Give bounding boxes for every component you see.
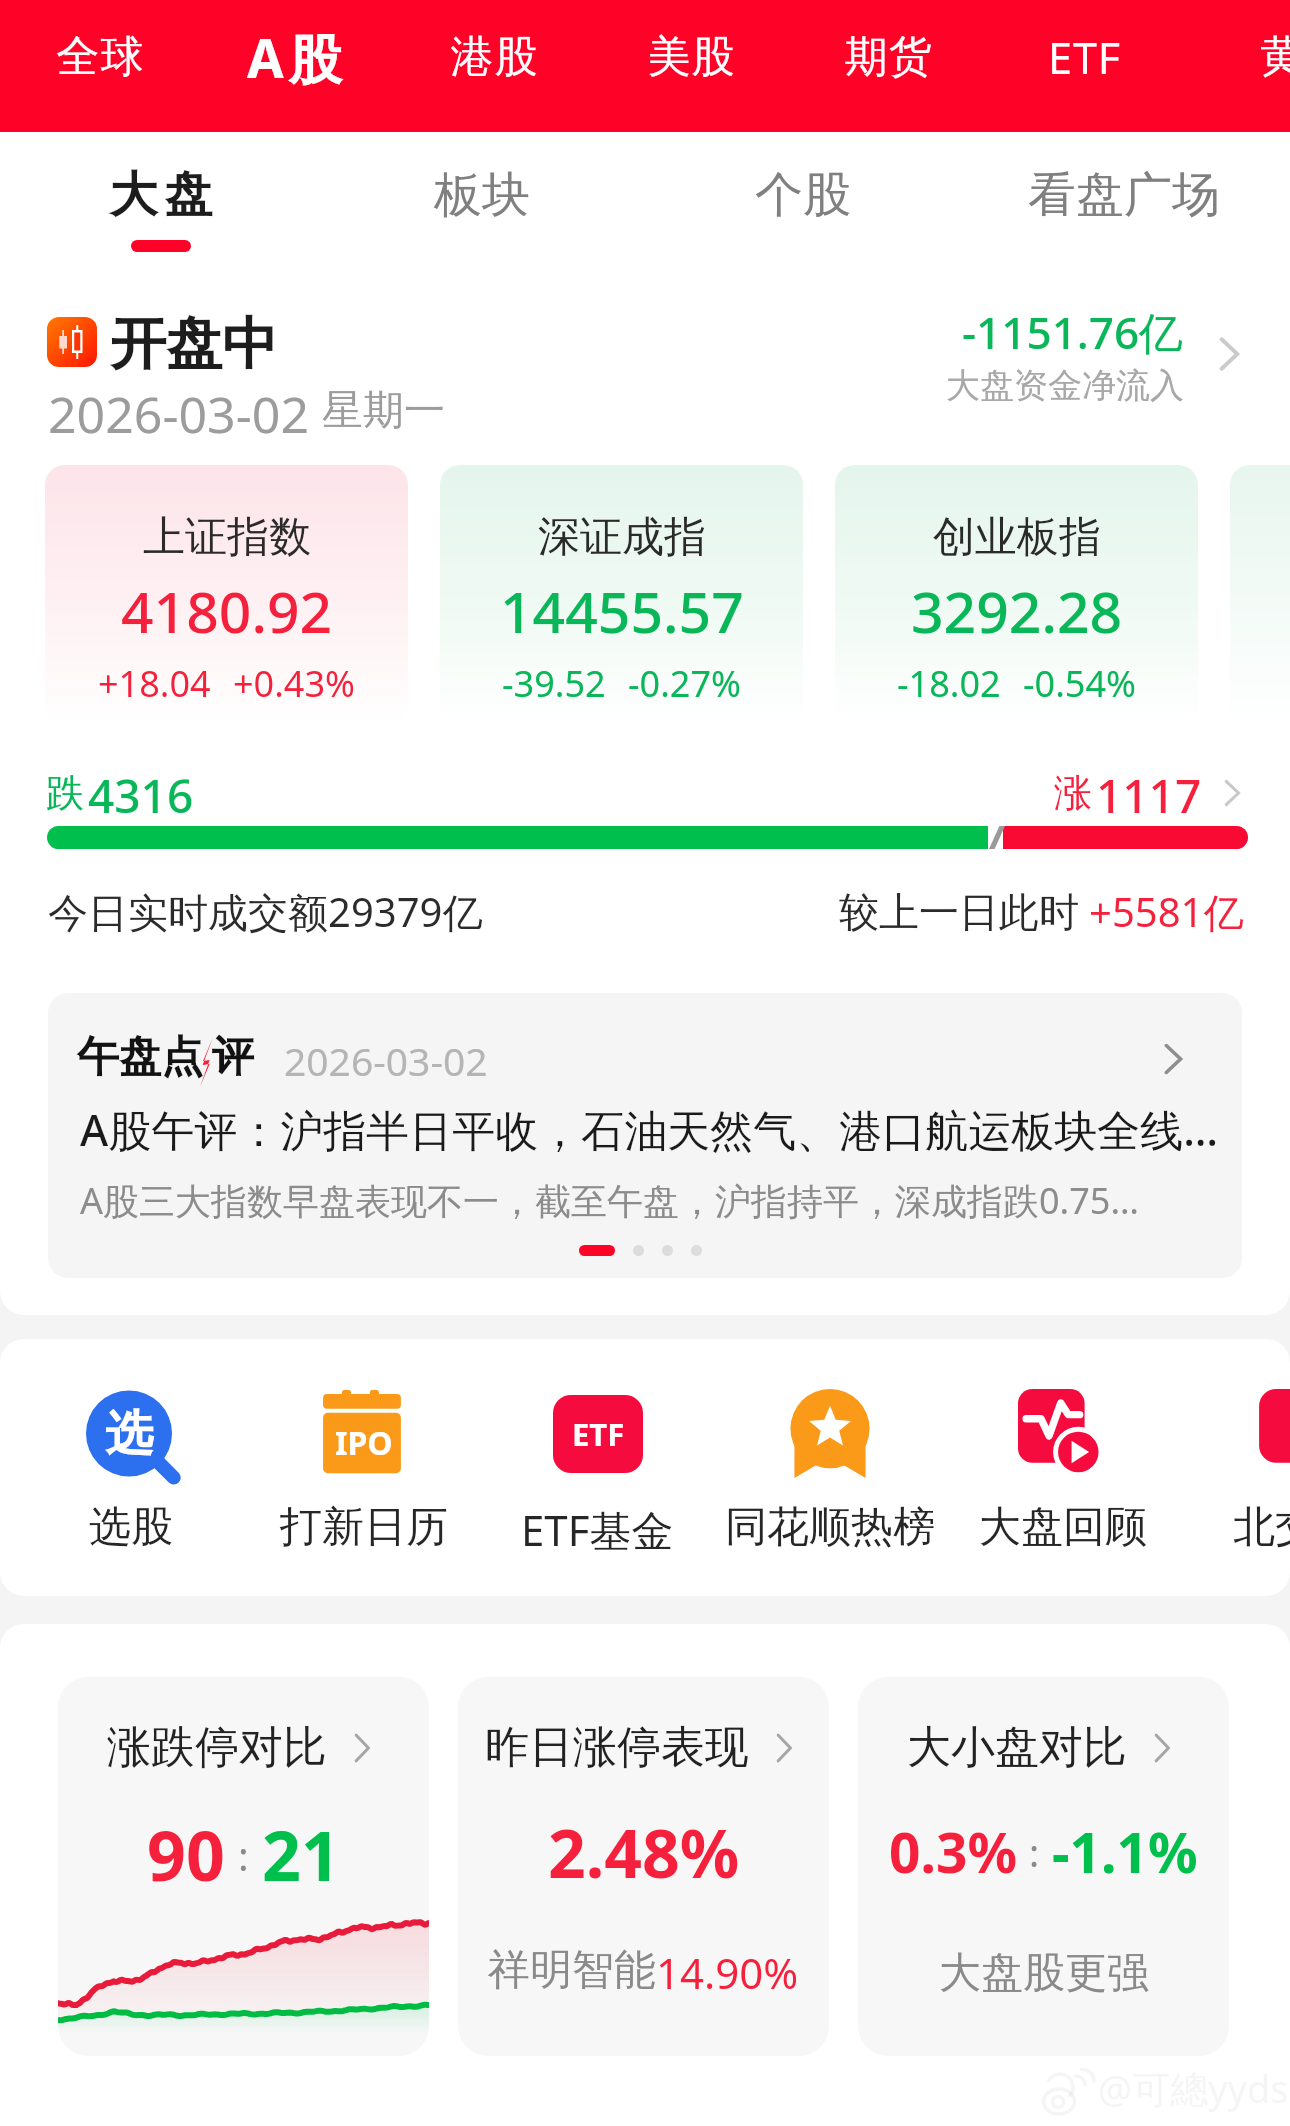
staticText: 选 [105, 1404, 153, 1464]
staticText: 4316 [88, 764, 194, 822]
button[interactable]: 昨日涨停表现 [458, 1677, 829, 2056]
staticText: 1117 [1096, 764, 1202, 822]
button[interactable]: 北交所 [1180, 1339, 1290, 1596]
staticText: 昨日涨停表现 [485, 1720, 749, 1775]
staticText: 上证指数 [143, 511, 311, 564]
staticText: -0.27% [628, 659, 741, 708]
staticText: +0.43% [233, 659, 355, 708]
staticText: +18.04 [98, 659, 211, 708]
staticText: 打新日历 [280, 1501, 448, 1554]
staticText: 美股 [647, 30, 735, 84]
staticText: -0.54% [1023, 659, 1136, 708]
button[interactable]: A股 [207, 0, 387, 123]
staticText: 涨跌停对比 [107, 1720, 327, 1775]
staticText: ETF基金 [521, 1501, 674, 1558]
staticText: -18.02 [897, 659, 1001, 708]
button[interactable]: 午盘点 [48, 993, 1242, 1278]
staticText: 2026-03-02 [48, 380, 309, 448]
staticText: 选股 [89, 1501, 173, 1554]
staticText: 创业板指 [933, 511, 1101, 564]
staticText: 跌 [46, 769, 84, 817]
button[interactable]: 板块 [362, 148, 602, 242]
staticText: 涨 [1054, 769, 1092, 817]
staticText: 2.48% [548, 1807, 740, 1897]
button[interactable]: 个股 [683, 148, 923, 242]
staticText: 北交所 [1233, 1501, 1290, 1554]
button[interactable]: 全球 [10, 0, 190, 123]
button[interactable]: 期货 [798, 0, 978, 123]
staticText: 14.90% [656, 1944, 799, 2001]
staticText: 0.3% [889, 1814, 1017, 1889]
staticText: 今日实时成交额29379亿 [48, 884, 483, 939]
staticText: 2026-03-02 [284, 1034, 488, 1087]
staticText: 较上一日此时 [839, 887, 1079, 937]
button[interactable]: 港股 [404, 0, 584, 123]
button[interactable]: ETF [995, 0, 1175, 123]
button[interactable]: ETF [481, 1339, 713, 1596]
button[interactable]: IPO [248, 1339, 480, 1596]
staticText: +5581亿 [1089, 884, 1244, 939]
staticText: 评 [212, 1031, 254, 1084]
button[interactable]: 开盘中 [0, 282, 1290, 444]
staticText: 星期一 [322, 385, 445, 437]
button[interactable]: 同花顺热榜 [714, 1339, 946, 1596]
button[interactable] [1230, 465, 1290, 725]
staticText: 21 [262, 1808, 340, 1901]
button[interactable]: 上证指数 [45, 465, 408, 725]
staticText: 港股 [450, 30, 538, 84]
staticText: : [1029, 1826, 1040, 1878]
staticText: 大盘 [106, 165, 216, 225]
staticText: 开盘中 [110, 309, 278, 380]
button[interactable]: 创业板指 [835, 465, 1198, 725]
button[interactable]: 涨跌停对比 [58, 1677, 429, 2056]
staticText: 大盘回顾 [979, 1501, 1147, 1554]
staticText: A股三大指数早盘表现不一，截至午盘，沪指持平，深成指跌0.75… [80, 1176, 1139, 1225]
button[interactable]: 大盘回顾 [947, 1339, 1179, 1596]
staticText: 期货 [844, 30, 932, 84]
staticText: IPO [335, 1421, 393, 1465]
staticText: 3292.28 [911, 572, 1123, 650]
staticText: A股 [247, 21, 347, 93]
button[interactable]: 大小盘对比 [858, 1677, 1229, 2056]
staticText: 板块 [434, 165, 530, 225]
staticText: 看盘广场 [1028, 165, 1220, 225]
staticText: 个股 [755, 165, 851, 225]
staticText: -1.1% [1052, 1814, 1198, 1889]
staticText: 大盘资金净流入 [946, 364, 1184, 407]
button[interactable]: 跌 [0, 764, 1290, 822]
staticText: -39.52 [502, 659, 606, 708]
button[interactable]: 看盘广场 [1004, 148, 1244, 242]
button[interactable]: 选 [15, 1339, 247, 1596]
staticText: 同花顺热榜 [725, 1501, 935, 1554]
staticText: @可總yyds [1098, 2062, 1289, 2114]
staticText: 午盘点 [77, 1031, 203, 1084]
staticText: 黄 [1260, 30, 1290, 84]
staticText: A股午评：沪指半日平收，石油天然气、港口航运板块全线… [80, 1100, 1218, 1159]
staticText: 大盘股更强 [939, 1947, 1149, 2000]
button[interactable]: 大盘 [41, 148, 281, 242]
staticText: 4180.92 [121, 572, 333, 650]
staticText: 大小盘对比 [907, 1720, 1127, 1775]
button[interactable]: 黄 [1192, 0, 1290, 123]
staticText: 14455.57 [500, 572, 744, 650]
staticText: : [238, 1828, 249, 1882]
staticText: ETF [572, 1413, 625, 1455]
staticText: 祥明智能 [488, 1944, 656, 1997]
staticText: ETF [1048, 28, 1122, 87]
staticText: 90 [147, 1808, 225, 1901]
staticText: -1151.76亿 [962, 302, 1184, 362]
other: 查看大盘资金净流入 [1206, 331, 1252, 377]
staticText: 深证成指 [538, 511, 706, 564]
other: 查看涨跌家数 [1214, 775, 1250, 811]
button[interactable]: 美股 [601, 0, 781, 123]
button[interactable]: 深证成指 [440, 465, 803, 725]
staticText: 全球 [56, 30, 144, 84]
